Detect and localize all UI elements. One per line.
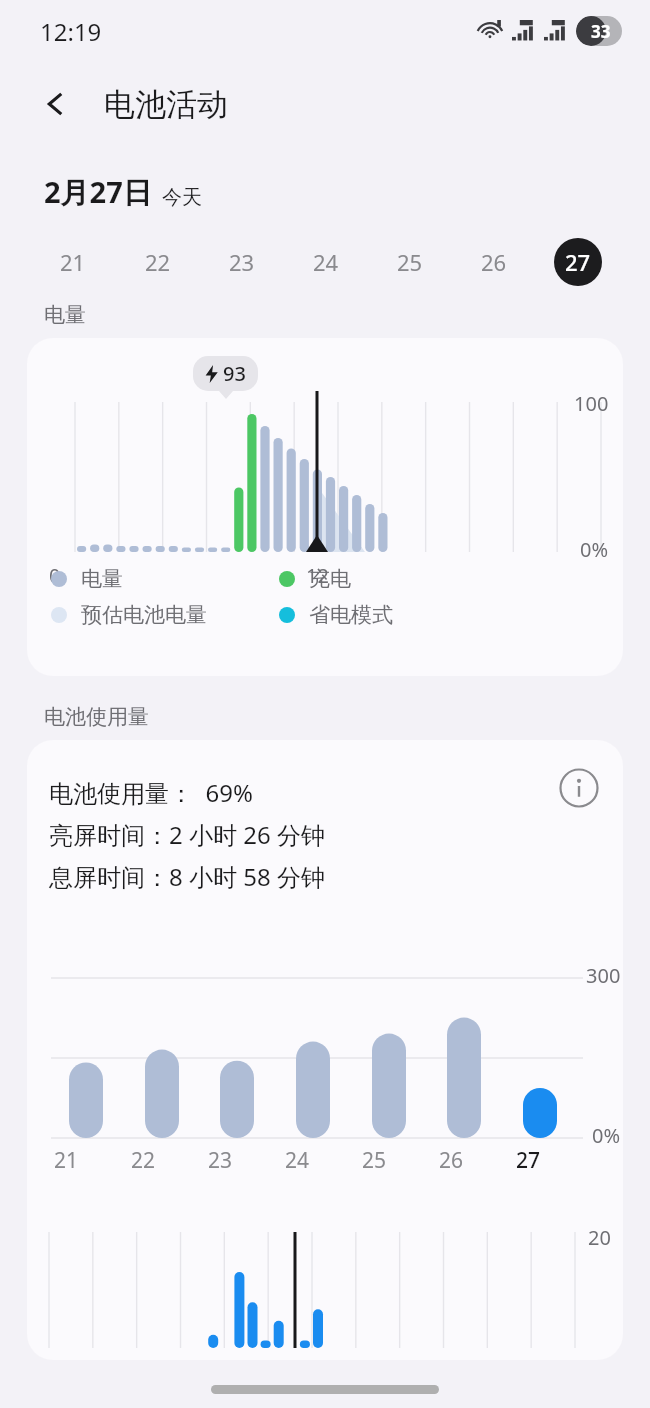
- button[interactable]: 26: [452, 234, 536, 290]
- staticText: 93: [223, 360, 246, 387]
- staticText: 23: [208, 1146, 233, 1175]
- staticText: 电量: [81, 566, 123, 592]
- staticText: 21: [60, 247, 86, 277]
- button[interactable]: 21: [30, 234, 115, 290]
- staticText: 电量: [44, 302, 86, 328]
- button[interactable]: 23: [200, 234, 284, 290]
- staticText: 22: [131, 1146, 156, 1175]
- staticText: 20: [588, 1224, 611, 1251]
- staticText: 电池使用量: [44, 704, 149, 730]
- staticText: 27: [516, 1146, 541, 1175]
- staticText: 2月27日: [44, 172, 152, 212]
- staticText: 33: [591, 20, 611, 43]
- staticText: 300: [586, 962, 621, 989]
- staticText: 21: [54, 1146, 79, 1175]
- staticText: 电池活动: [104, 85, 228, 124]
- staticText: 27: [565, 247, 591, 277]
- staticText: 今天: [162, 185, 202, 210]
- staticText: 电池使用量： 69%: [49, 776, 253, 809]
- staticText: 26: [439, 1146, 464, 1175]
- button[interactable]: 27: [536, 234, 620, 290]
- button[interactable]: 电量: [51, 566, 279, 592]
- staticText: 25: [362, 1146, 387, 1175]
- staticText: 25: [397, 247, 423, 277]
- staticText: 12:19: [40, 15, 102, 48]
- staticText: 12: [306, 562, 329, 589]
- staticText: 亮屏时间：2 小时 26 分钟: [49, 818, 325, 851]
- staticText: 省电模式: [309, 602, 393, 628]
- button[interactable]: 充电: [279, 566, 351, 592]
- button[interactable]: 100: [27, 338, 623, 676]
- button[interactable]: 24: [284, 234, 368, 290]
- button[interactable]: 省电模式: [279, 602, 393, 628]
- staticText: 0: [49, 562, 61, 589]
- button[interactable]: 返回: [28, 76, 84, 132]
- button[interactable]: 预估电池电量: [51, 602, 279, 628]
- staticText: 充电: [309, 566, 351, 592]
- staticText: 息屏时间：8 小时 58 分钟: [49, 860, 325, 893]
- button[interactable]: 信息: [555, 764, 603, 812]
- staticText: 0%: [592, 1122, 621, 1149]
- button[interactable]: 22: [115, 234, 200, 290]
- staticText: 100: [574, 390, 609, 417]
- button[interactable]: 25: [368, 234, 452, 290]
- staticText: 24: [313, 247, 339, 277]
- staticText: 预估电池电量: [81, 602, 207, 628]
- staticText: 26: [481, 247, 507, 277]
- button[interactable]: 电池使用量： 69%: [27, 740, 623, 1360]
- staticText: 22: [145, 247, 171, 277]
- staticText: 0%: [580, 536, 609, 563]
- staticText: 23: [229, 247, 255, 277]
- staticText: 24: [285, 1146, 310, 1175]
